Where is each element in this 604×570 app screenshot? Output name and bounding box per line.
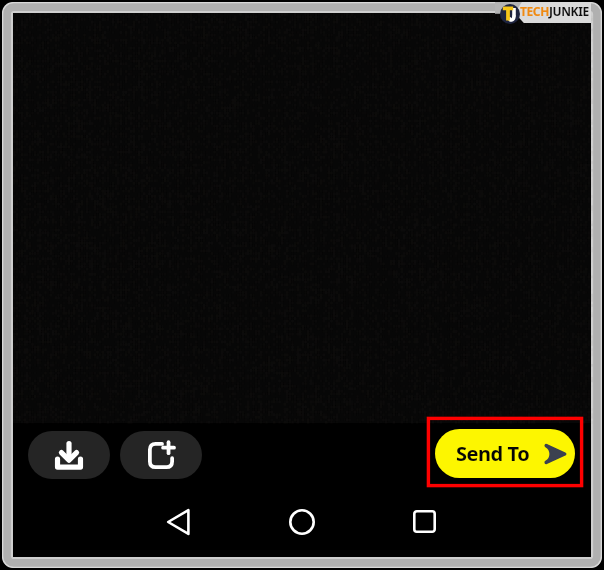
button[interactable]: Send To bbox=[435, 429, 575, 478]
staticText: TECH bbox=[520, 3, 549, 19]
staticText: Send To bbox=[456, 440, 530, 467]
button[interactable]: Home bbox=[284, 503, 320, 540]
button[interactable]: Add to Story bbox=[120, 431, 202, 479]
staticText: JUNKIE bbox=[549, 3, 589, 19]
button[interactable]: Recents bbox=[406, 503, 442, 540]
button[interactable]: Back bbox=[160, 503, 196, 540]
button[interactable]: Save bbox=[28, 431, 110, 479]
